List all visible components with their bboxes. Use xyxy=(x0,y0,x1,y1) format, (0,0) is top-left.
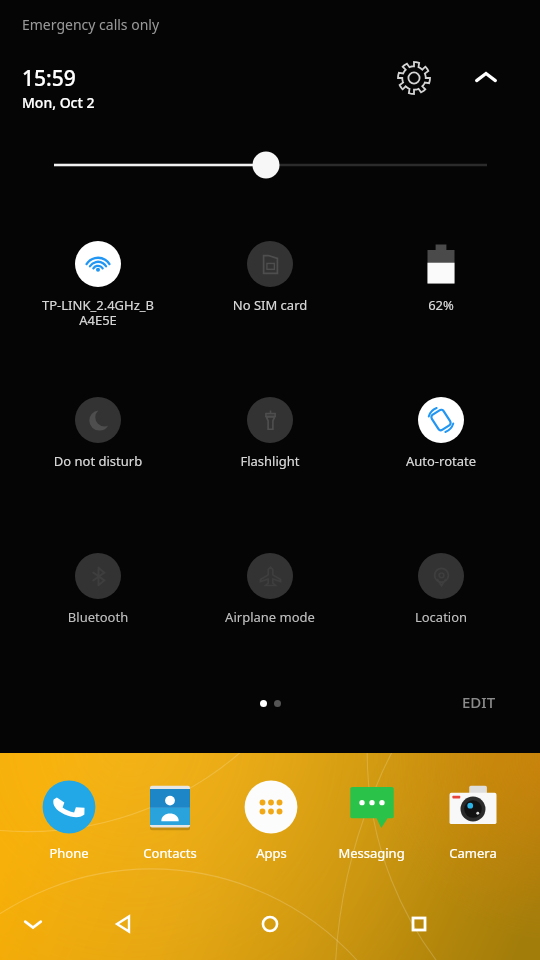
staticText: Emergency calls only xyxy=(22,15,160,34)
staticText: Location xyxy=(365,608,517,626)
staticText: Messaging xyxy=(338,844,405,862)
button[interactable]: Brightness xyxy=(0,140,540,190)
button[interactable]: Auto-rotate xyxy=(365,397,517,487)
staticText: Do not disturb xyxy=(22,452,174,470)
staticText: TP-LINK_2.4GHz_B A4E5E xyxy=(22,296,174,329)
button[interactable]: EDIT xyxy=(438,681,520,723)
staticText: Airplane mode xyxy=(194,608,346,626)
staticText: Auto-rotate xyxy=(365,452,517,470)
button[interactable]: Settings xyxy=(390,54,438,102)
staticText: EDIT xyxy=(462,692,496,712)
staticText: 62% xyxy=(365,296,517,314)
staticText: No SIM card xyxy=(194,296,346,314)
staticText: Contacts xyxy=(143,844,197,862)
button[interactable]: Phone xyxy=(18,777,119,889)
staticText: 15:59 xyxy=(22,64,76,93)
button[interactable]: Home xyxy=(246,900,294,948)
button[interactable]: Recent apps xyxy=(395,900,443,948)
button[interactable]: Back xyxy=(99,900,147,948)
button[interactable]: Contacts xyxy=(119,777,220,889)
button[interactable]: Do not disturb xyxy=(22,397,174,487)
button[interactable]: No SIM card xyxy=(194,241,346,331)
staticText: Flashlight xyxy=(194,452,346,470)
button[interactable]: Flashlight xyxy=(194,397,346,487)
staticText: Apps xyxy=(256,844,287,862)
button[interactable]: Camera xyxy=(422,777,523,889)
button[interactable]: Collapse panel xyxy=(462,54,510,102)
button[interactable]: Battery 62 percent xyxy=(365,241,517,331)
button[interactable]: Airplane mode xyxy=(194,553,346,643)
staticText: Bluetooth xyxy=(22,608,174,626)
button[interactable]: Messaging xyxy=(321,777,422,889)
staticText: Phone xyxy=(49,844,89,862)
button[interactable]: Apps xyxy=(220,777,321,889)
button[interactable]: Location xyxy=(365,553,517,643)
staticText: Mon, Oct 2 xyxy=(22,93,95,112)
button[interactable]: TP-LINK_2.4GHz_B A4E5E xyxy=(22,241,174,331)
staticText: Camera xyxy=(449,844,497,862)
button[interactable]: Hide keyboard xyxy=(9,900,57,948)
button[interactable]: Bluetooth xyxy=(22,553,174,643)
